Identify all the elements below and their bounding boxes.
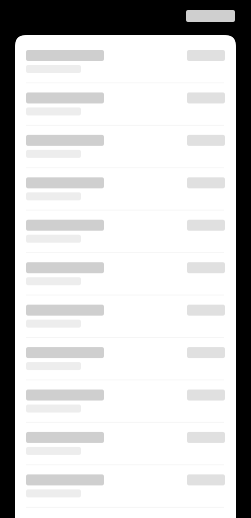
button[interactable]: Loading item: [15, 465, 236, 508]
button[interactable]: Loading item: [15, 380, 236, 423]
button[interactable]: Loading item: [15, 253, 236, 296]
button[interactable]: Loading item: [15, 83, 236, 126]
button[interactable]: Loading item: [15, 338, 236, 380]
button[interactable]: Loading item: [15, 211, 236, 253]
button[interactable]: Loading item: [15, 423, 236, 465]
button[interactable]: Loading item: [15, 168, 236, 211]
button[interactable]: Loading item: [15, 296, 236, 338]
button[interactable]: Loading item: [15, 126, 236, 168]
button[interactable]: Loading action: [186, 10, 235, 22]
button[interactable]: Loading item: [15, 41, 236, 83]
